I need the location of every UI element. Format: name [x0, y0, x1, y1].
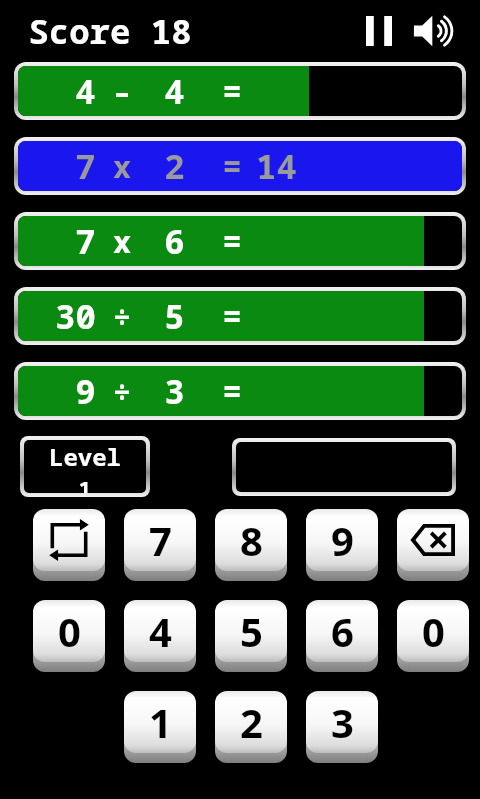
button[interactable]: 5 [215, 600, 287, 672]
staticText: 3 [331, 695, 354, 749]
button[interactable]: 9 [14, 362, 466, 420]
button[interactable]: 7 [14, 137, 466, 195]
staticText: 9 [331, 513, 354, 567]
staticText: ÷ [113, 371, 131, 412]
staticText: Score 18 [28, 8, 192, 54]
staticText: 30 [55, 293, 96, 339]
staticText: – [113, 71, 131, 112]
staticText: = [222, 144, 242, 188]
button[interactable]: Sound [412, 13, 460, 49]
button[interactable]: Change operation [33, 509, 105, 581]
button[interactable]: 0 [33, 600, 105, 672]
button[interactable]: 2 [215, 691, 287, 763]
staticText: 7 [75, 143, 96, 189]
staticText: 0 [58, 604, 81, 658]
button[interactable]: 1 [124, 691, 196, 763]
staticText: 14 [256, 143, 297, 189]
button[interactable]: 4 [14, 62, 466, 120]
staticText: 2 [164, 143, 185, 189]
staticText: Level [49, 440, 121, 473]
staticText: 8 [240, 513, 263, 567]
staticText: 9 [75, 368, 96, 414]
staticText: 3 [164, 368, 185, 414]
button[interactable]: Level [24, 440, 146, 493]
staticText: = [222, 294, 242, 338]
staticText: = [222, 219, 242, 263]
button[interactable]: 3 [306, 691, 378, 763]
button[interactable]: 8 [215, 509, 287, 581]
staticText: = [222, 69, 242, 113]
staticText: = [222, 369, 242, 413]
staticText: 7 [75, 218, 96, 264]
staticText: 7 [149, 513, 172, 567]
staticText: 1 [149, 695, 172, 749]
button[interactable]: 7 [14, 212, 466, 270]
staticText: ÷ [113, 296, 131, 337]
staticText: 2 [240, 695, 263, 749]
staticText: 5 [164, 293, 185, 339]
button[interactable]: 30 [14, 287, 466, 345]
button[interactable]: 6 [306, 600, 378, 672]
staticText: 0 [422, 604, 445, 658]
staticText: 5 [240, 604, 263, 658]
staticText: 1 [78, 473, 92, 493]
staticText: 6 [164, 218, 185, 264]
staticText: x [113, 221, 131, 262]
button[interactable]: 0 [397, 600, 469, 672]
button[interactable]: 7 [124, 509, 196, 581]
staticText: 4 [164, 68, 185, 114]
staticText: 4 [149, 604, 172, 658]
button[interactable]: Pause [362, 14, 396, 48]
button[interactable]: 4 [124, 600, 196, 672]
button[interactable] [236, 442, 452, 492]
staticText: 4 [75, 68, 96, 114]
staticText: 6 [331, 604, 354, 658]
button[interactable]: 9 [306, 509, 378, 581]
staticText: x [113, 146, 131, 187]
button[interactable]: Backspace [397, 509, 469, 581]
